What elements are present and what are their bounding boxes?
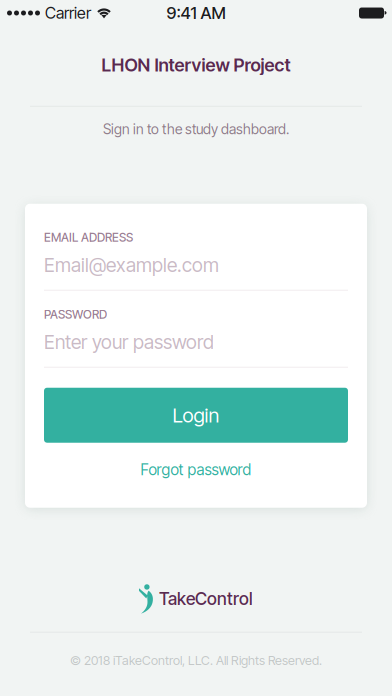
staticText: LHON Interview Project — [101, 54, 290, 76]
staticText: Carrier — [45, 3, 91, 23]
button[interactable]: Forgot password — [44, 443, 348, 492]
staticText: Login — [172, 403, 219, 427]
staticText: Sign in to the study dashboard. — [103, 121, 289, 138]
staticText: PASSWORD — [44, 307, 107, 322]
staticText: 9:41 AM — [166, 3, 225, 23]
staticText: Email@example.com — [44, 253, 219, 277]
staticText: Forgot password — [140, 460, 251, 479]
staticText: EMAIL ADDRESS — [44, 230, 133, 245]
staticText: TakeControl — [159, 588, 253, 609]
staticText: Enter your password — [44, 330, 214, 354]
staticText: © 2018 iTakeControl, LLC. All Rights Res… — [70, 653, 322, 668]
button[interactable]: Login — [44, 388, 348, 443]
